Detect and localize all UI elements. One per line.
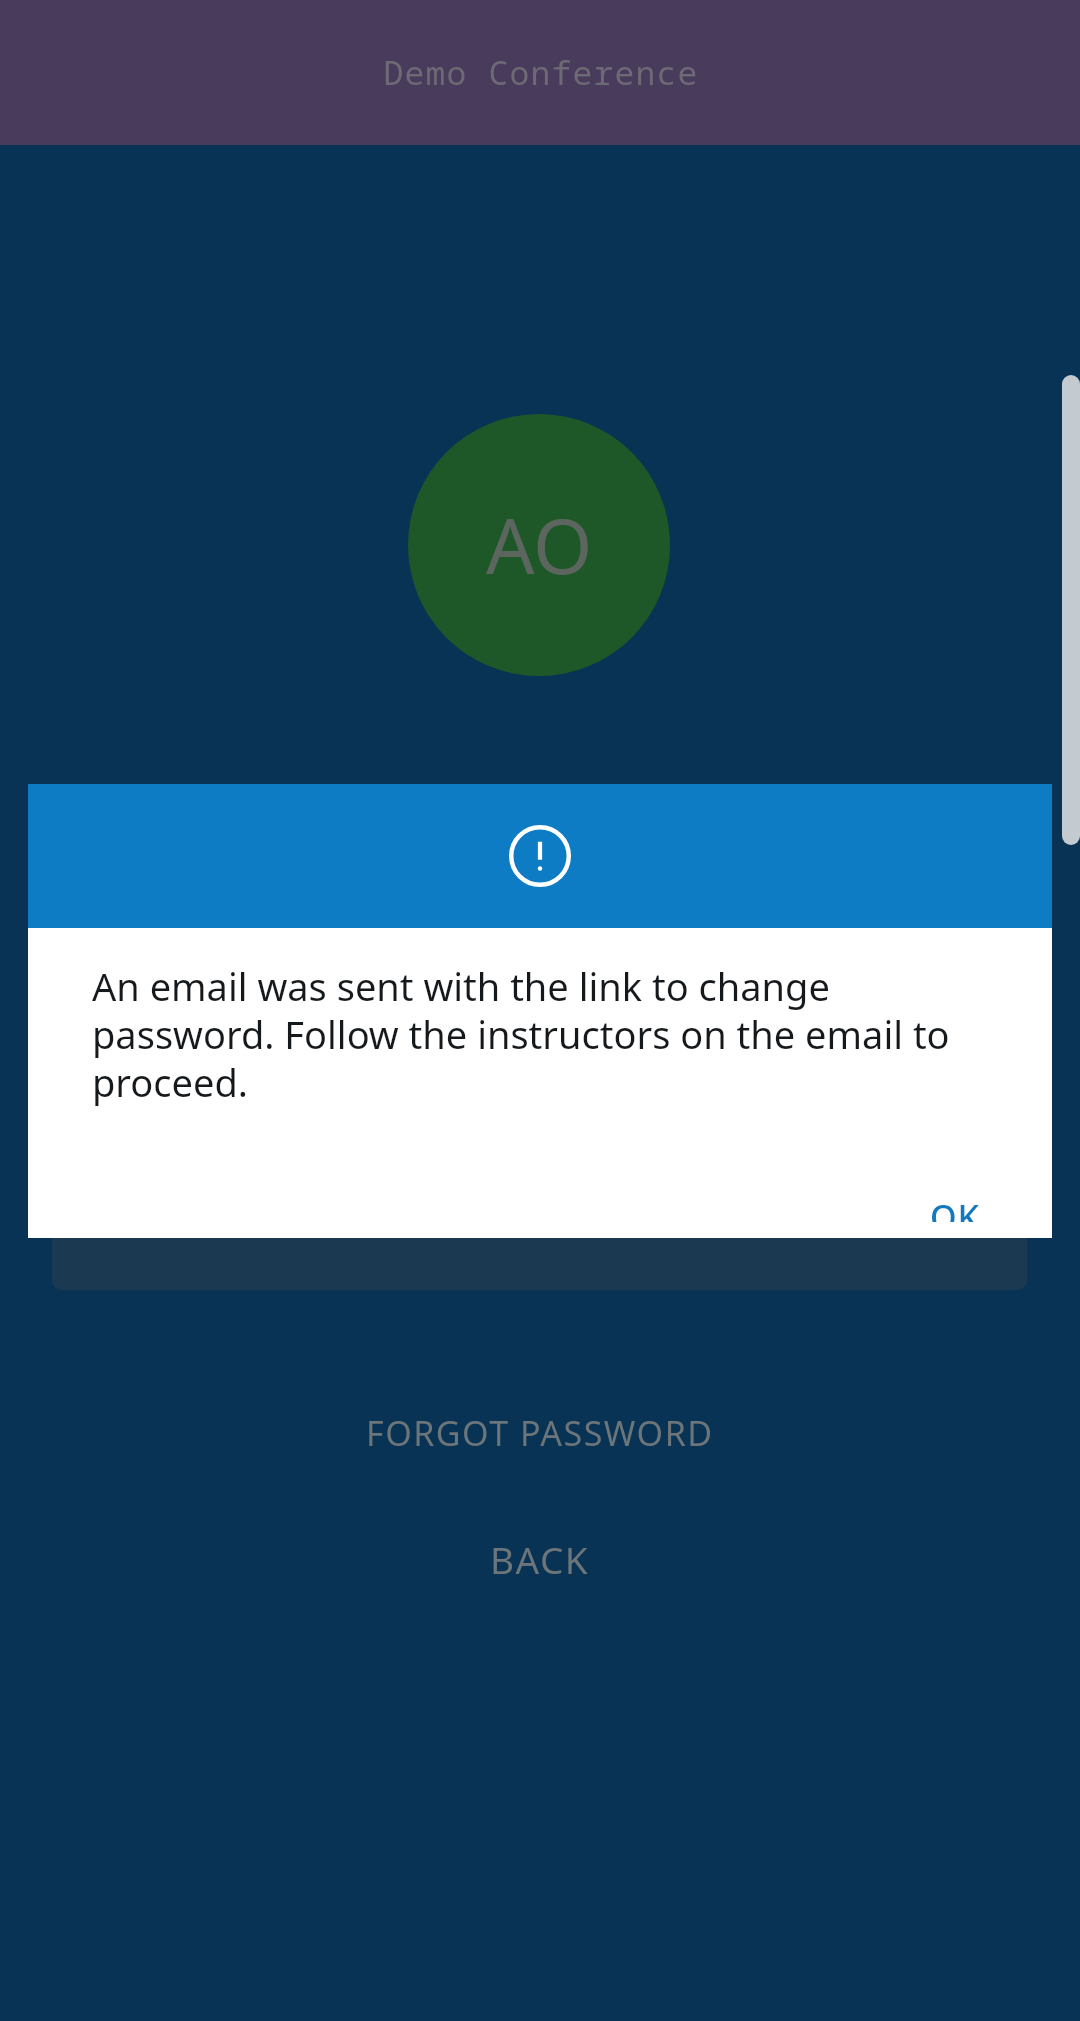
- staticText: LOG IN: [474, 1196, 605, 1245]
- staticText: FORGOT PASSWORD: [366, 1410, 714, 1456]
- staticText: An email was sent with the link to chang…: [92, 960, 1012, 1108]
- staticText: BACK: [490, 1534, 590, 1584]
- staticText: Demo Conference: [383, 50, 698, 95]
- button[interactable]: Profile avatar: [408, 414, 670, 676]
- button[interactable]: BACK: [0, 1511, 1080, 1607]
- other: Information: [509, 825, 571, 887]
- button[interactable]: FORGOT PASSWORD: [0, 1385, 1080, 1481]
- button[interactable]: LOG IN: [52, 1150, 1027, 1290]
- staticText: AO: [486, 493, 593, 597]
- staticText: OK: [930, 1194, 980, 1222]
- button[interactable]: OK: [908, 1178, 1002, 1238]
